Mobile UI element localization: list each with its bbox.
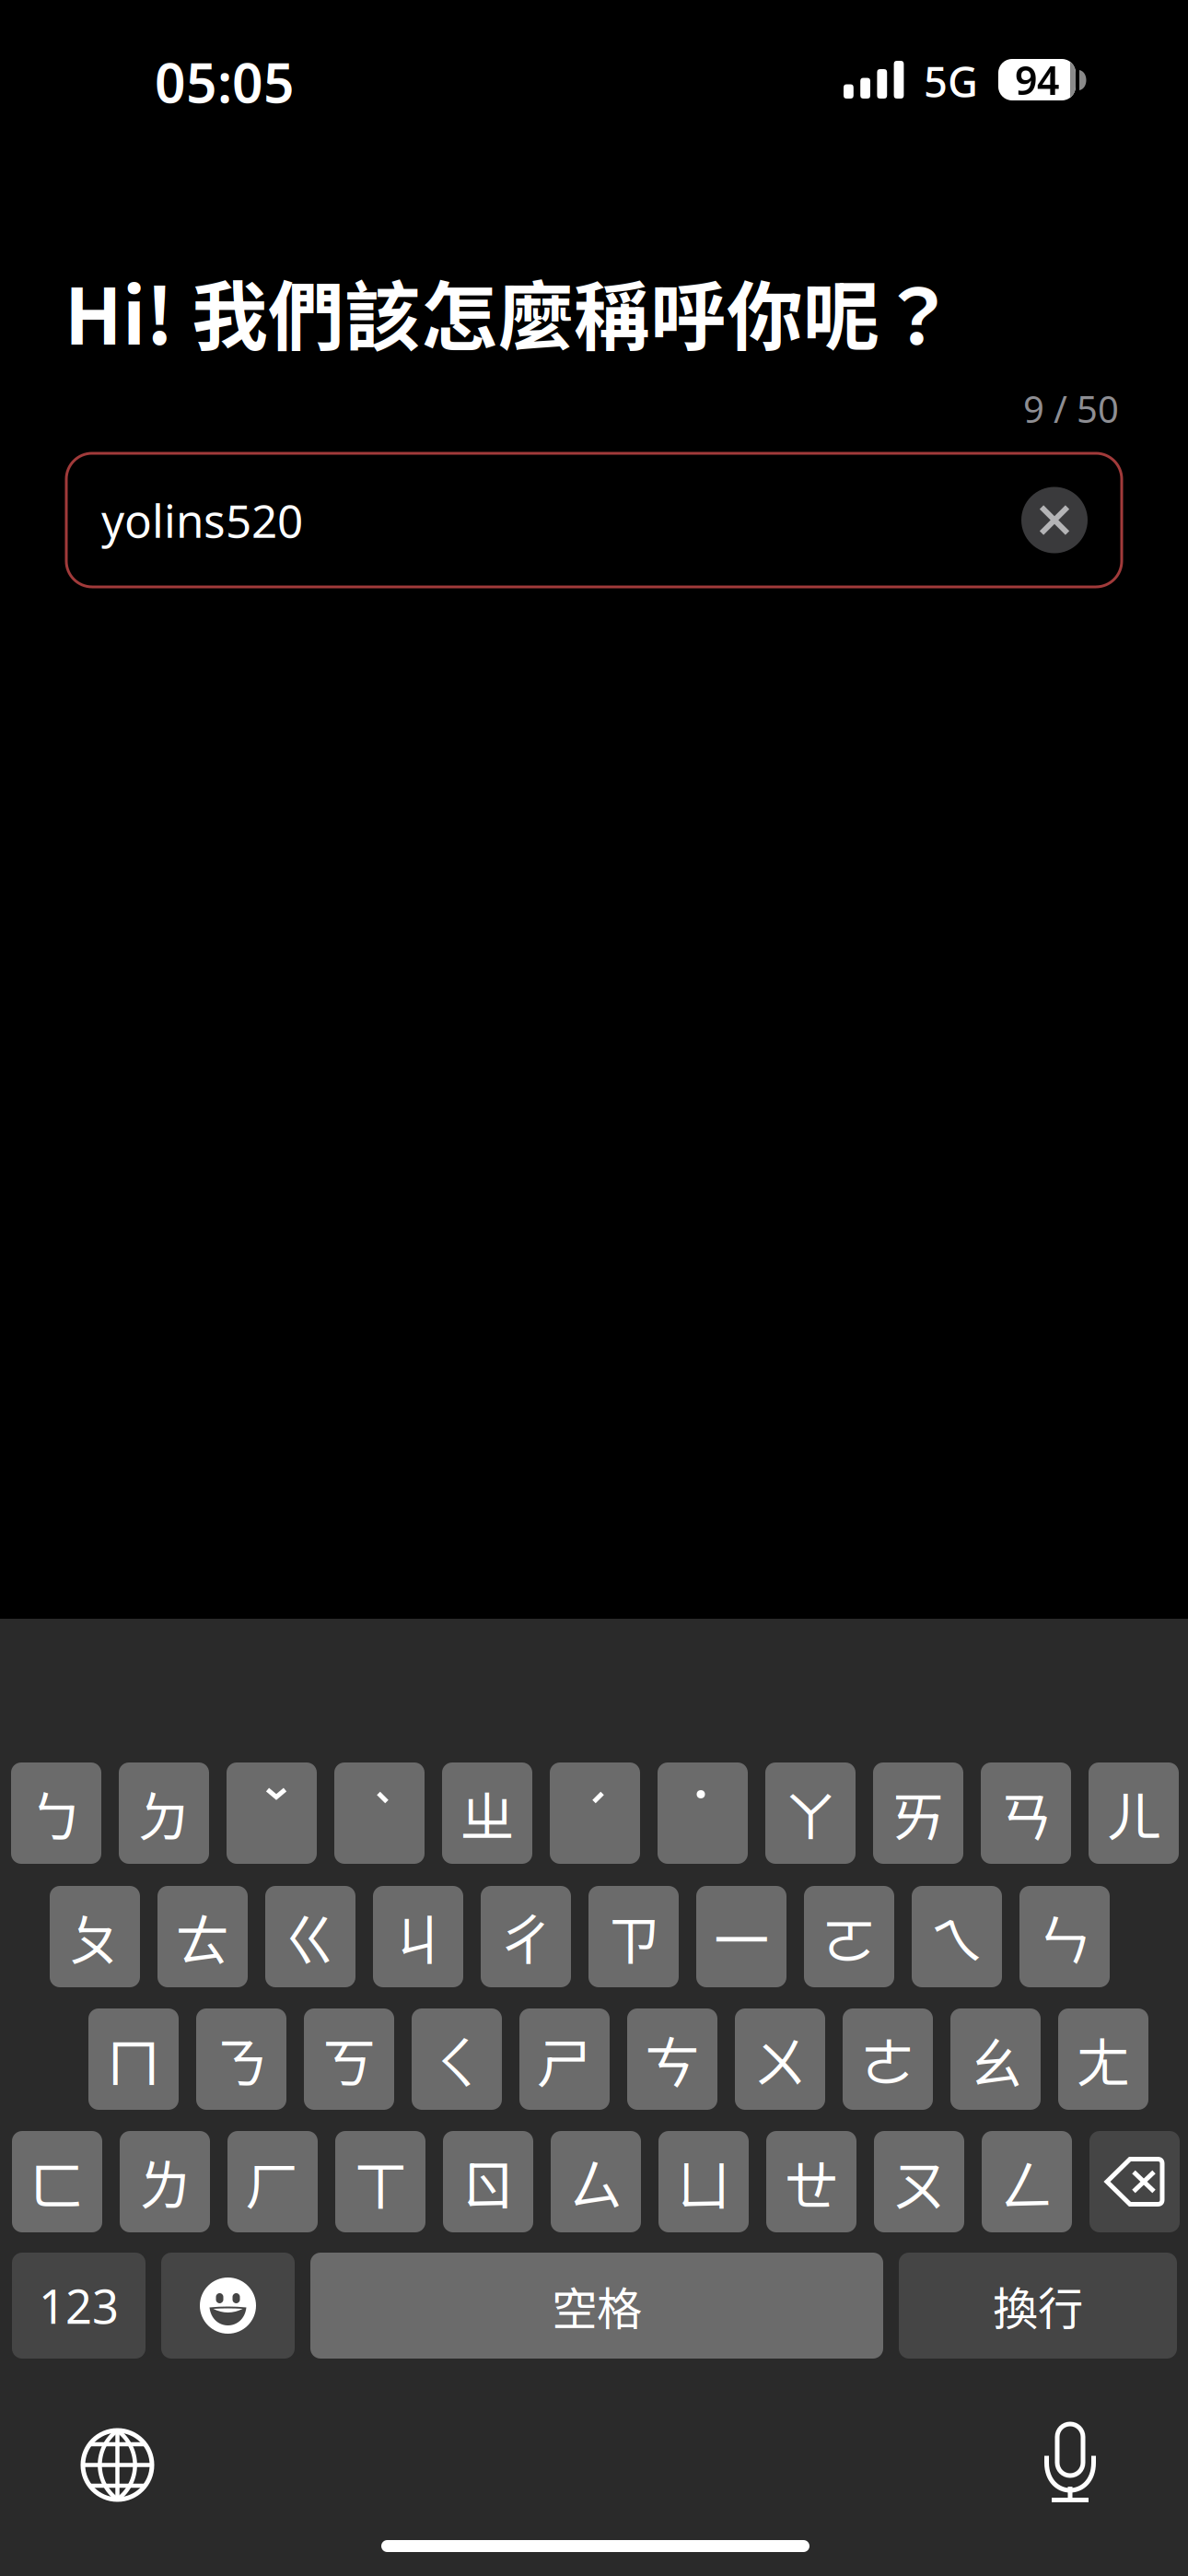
staticText: ㄉ: [136, 1773, 192, 1853]
staticText: Hi! 我們該怎麼稱呼你呢？: [64, 256, 956, 366]
button[interactable]: ㄍ: [265, 1886, 355, 1987]
staticText: ㄨ: [752, 2019, 808, 2099]
button[interactable]: ㄖ: [443, 2131, 533, 2232]
staticText: ㄓ: [460, 1773, 515, 1853]
staticText: 一: [714, 1897, 769, 1977]
button[interactable]: ㄛ: [804, 1886, 894, 1987]
button[interactable]: ㄨ: [735, 2008, 825, 2110]
button[interactable]: ㄠ: [950, 2008, 1041, 2110]
button[interactable]: [334, 1762, 425, 1864]
staticText: ㄈ: [29, 2142, 85, 2222]
button[interactable]: ㄩ: [658, 2131, 749, 2232]
staticText: ㄅ: [29, 1773, 84, 1853]
staticText: 空格: [552, 2273, 642, 2338]
staticText: ㄣ: [1037, 1897, 1092, 1977]
button[interactable]: ㄢ: [981, 1762, 1071, 1864]
staticText: ㄍ: [283, 1897, 338, 1977]
button[interactable]: ㄆ: [50, 1886, 140, 1987]
button[interactable]: ㄇ: [88, 2008, 179, 2110]
button[interactable]: 123: [12, 2253, 146, 2359]
button[interactable]: ㄈ: [12, 2131, 102, 2232]
button[interactable]: ㄜ: [843, 2008, 933, 2110]
button[interactable]: ㄦ: [1089, 1762, 1179, 1864]
button[interactable]: ㄏ: [227, 2131, 318, 2232]
button[interactable]: ㄐ: [373, 1886, 463, 1987]
button[interactable]: ㄘ: [627, 2008, 717, 2110]
staticText: ㄔ: [498, 1897, 553, 1977]
button[interactable]: ㄌ: [120, 2131, 210, 2232]
staticText: ㄐ: [390, 1897, 446, 1977]
button[interactable]: Emoji keyboard: [161, 2253, 295, 2359]
staticText: ㄙ: [568, 2142, 623, 2222]
button[interactable]: 一: [696, 1886, 786, 1987]
button[interactable]: Dictation: [1044, 2424, 1096, 2505]
button[interactable]: ㄓ: [442, 1762, 532, 1864]
staticText: ㄊ: [175, 1897, 230, 1977]
staticText: yolins520: [101, 490, 303, 550]
button[interactable]: [227, 1762, 317, 1864]
button[interactable]: ㄊ: [157, 1886, 248, 1987]
staticText: ㄢ: [998, 1773, 1054, 1853]
button[interactable]: ㄙ: [551, 2131, 641, 2232]
staticText: ㄕ: [537, 2019, 592, 2099]
button[interactable]: ㄚ: [765, 1762, 856, 1864]
button[interactable]: Delete: [1089, 2131, 1180, 2232]
button[interactable]: ㄣ: [1019, 1886, 1110, 1987]
button[interactable]: ㄝ: [766, 2131, 856, 2232]
button[interactable]: ㄑ: [412, 2008, 502, 2110]
staticText: ㄎ: [321, 2019, 377, 2099]
button[interactable]: ㄅ: [11, 1762, 101, 1864]
button[interactable]: ㄗ: [588, 1886, 679, 1987]
button[interactable]: 空格: [310, 2253, 883, 2359]
staticText: ㄠ: [968, 2019, 1023, 2099]
button[interactable]: ㄎ: [304, 2008, 394, 2110]
staticText: ㄥ: [999, 2142, 1054, 2222]
staticText: ㄦ: [1106, 1773, 1161, 1853]
staticText: ㄖ: [460, 2142, 516, 2222]
button[interactable]: ㄤ: [1058, 2008, 1148, 2110]
staticText: ㄒ: [353, 2142, 408, 2222]
staticText: ㄡ: [891, 2142, 947, 2222]
button[interactable]: ㄕ: [519, 2008, 610, 2110]
button[interactable]: [658, 1762, 748, 1864]
staticText: ㄤ: [1076, 2019, 1131, 2099]
button[interactable]: ㄡ: [874, 2131, 964, 2232]
button[interactable]: [550, 1762, 640, 1864]
staticText: ㄜ: [860, 2019, 915, 2099]
button[interactable]: ㄒ: [335, 2131, 425, 2232]
staticText: ㄟ: [929, 1897, 984, 1977]
staticText: ㄑ: [429, 2019, 484, 2099]
staticText: ㄗ: [606, 1897, 661, 1977]
staticText: 94: [1015, 54, 1059, 106]
staticText: ㄞ: [891, 1773, 946, 1853]
staticText: ㄆ: [67, 1897, 122, 1977]
staticText: 換行: [993, 2273, 1083, 2338]
staticText: ㄌ: [137, 2142, 192, 2222]
button[interactable]: Nickname: [66, 453, 1122, 587]
button[interactable]: ㄉ: [119, 1762, 209, 1864]
staticText: 9 / 50: [1023, 384, 1119, 433]
staticText: ㄋ: [214, 2019, 269, 2099]
button[interactable]: ㄋ: [196, 2008, 286, 2110]
staticText: ㄏ: [245, 2142, 300, 2222]
staticText: ㄩ: [676, 2142, 731, 2222]
button[interactable]: ㄔ: [481, 1886, 571, 1987]
button[interactable]: ㄥ: [982, 2131, 1072, 2232]
button[interactable]: Next keyboard: [80, 2428, 155, 2502]
button[interactable]: Clear text: [1021, 487, 1088, 553]
staticText: ㄝ: [784, 2142, 839, 2222]
staticText: 123: [39, 2275, 119, 2337]
staticText: 05:05: [155, 46, 295, 118]
button[interactable]: 換行: [899, 2253, 1177, 2359]
staticText: ㄇ: [106, 2019, 161, 2099]
staticText: ㄚ: [783, 1773, 838, 1853]
staticText: ㄘ: [645, 2019, 700, 2099]
button[interactable]: ㄞ: [873, 1762, 963, 1864]
staticText: 5G: [924, 53, 978, 109]
button[interactable]: ㄟ: [912, 1886, 1002, 1987]
staticText: ㄛ: [821, 1897, 877, 1977]
